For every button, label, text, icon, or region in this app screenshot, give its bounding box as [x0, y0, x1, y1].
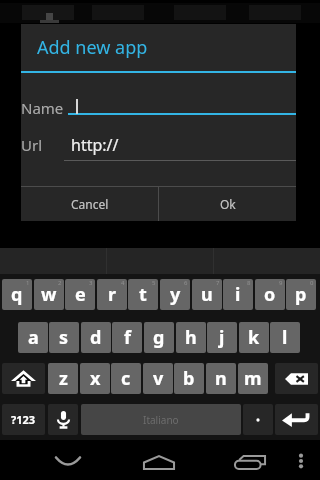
- button[interactable]: s: [49, 322, 79, 353]
- button[interactable]: Hide keyboard: [46, 442, 90, 480]
- staticText: g: [153, 325, 165, 350]
- button[interactable]: More options: [285, 445, 317, 477]
- staticText: z: [59, 366, 68, 391]
- staticText: Italiano: [143, 413, 179, 427]
- button[interactable]: Shift: [2, 363, 45, 394]
- staticText: ?123: [11, 412, 36, 427]
- button[interactable]: x: [80, 363, 110, 394]
- staticText: p: [295, 282, 307, 307]
- button[interactable]: k: [239, 322, 269, 353]
- staticText: s: [59, 325, 69, 350]
- staticText: f: [124, 325, 131, 350]
- button[interactable]: f: [112, 322, 142, 353]
- staticText: c: [121, 366, 131, 391]
- staticText: 3: [89, 279, 93, 287]
- staticText: a: [28, 325, 39, 350]
- button[interactable]: Enter: [275, 404, 318, 435]
- button[interactable]: e: [65, 279, 95, 310]
- button[interactable]: q: [2, 279, 32, 310]
- staticText: y: [170, 282, 181, 307]
- staticText: x: [90, 366, 101, 391]
- staticText: w: [41, 282, 57, 307]
- button[interactable]: g: [144, 322, 174, 353]
- staticText: q: [11, 282, 23, 307]
- button[interactable]: z: [48, 363, 78, 394]
- staticText: 1: [26, 279, 30, 287]
- staticText: i: [235, 282, 241, 307]
- staticText: 4: [121, 279, 125, 287]
- staticText: o: [264, 282, 276, 307]
- button[interactable]: a: [18, 322, 48, 353]
- staticText: u: [201, 282, 213, 307]
- staticText: 5: [152, 279, 156, 287]
- staticText: b: [183, 366, 195, 391]
- button[interactable]: Voice input: [48, 404, 78, 435]
- staticText: Name: [21, 98, 64, 118]
- staticText: l: [282, 325, 288, 350]
- staticText: 7: [216, 279, 220, 287]
- button[interactable]: n: [206, 363, 236, 394]
- staticText: d: [90, 325, 102, 350]
- staticText: t: [139, 282, 147, 307]
- button[interactable]: r: [97, 279, 127, 310]
- staticText: Url: [21, 135, 43, 155]
- staticText: n: [215, 366, 227, 391]
- staticText: e: [75, 282, 86, 307]
- staticText: 9: [279, 279, 283, 287]
- staticText: http://: [71, 134, 119, 156]
- staticText: k: [248, 325, 260, 350]
- button[interactable]: c: [111, 363, 141, 394]
- button[interactable]: Recent apps: [228, 442, 272, 480]
- button[interactable]: Cancel: [21, 187, 158, 221]
- button[interactable]: u: [192, 279, 222, 310]
- button[interactable]: Period: [243, 404, 273, 435]
- button[interactable]: v: [143, 363, 173, 394]
- staticText: j: [219, 325, 225, 350]
- button[interactable]: i: [223, 279, 253, 310]
- staticText: 8: [247, 279, 251, 287]
- button[interactable]: m: [238, 363, 268, 394]
- staticText: 2: [58, 279, 62, 287]
- button[interactable]: Backspace: [275, 363, 318, 394]
- staticText: h: [185, 325, 197, 350]
- button[interactable]: t: [128, 279, 158, 310]
- button[interactable]: w: [34, 279, 64, 310]
- button[interactable]: Ok: [159, 187, 296, 221]
- button[interactable]: Italiano: [81, 404, 241, 435]
- button[interactable]: Home: [137, 442, 181, 480]
- button[interactable]: h: [176, 322, 206, 353]
- staticText: Ok: [220, 196, 236, 212]
- staticText: 6: [184, 279, 188, 287]
- button[interactable]: d: [81, 322, 111, 353]
- button[interactable]: b: [174, 363, 204, 394]
- button[interactable]: o: [255, 279, 285, 310]
- button[interactable]: Symbols: [2, 404, 45, 435]
- button[interactable]: j: [207, 322, 237, 353]
- button[interactable]: y: [160, 279, 190, 310]
- staticText: r: [108, 282, 117, 307]
- button[interactable]: l: [270, 322, 300, 353]
- staticText: Cancel: [71, 196, 109, 212]
- staticText: m: [244, 366, 262, 391]
- staticText: 0: [310, 279, 314, 287]
- staticText: Add new app: [37, 35, 148, 60]
- button[interactable]: p: [286, 279, 316, 310]
- staticText: v: [153, 366, 164, 391]
